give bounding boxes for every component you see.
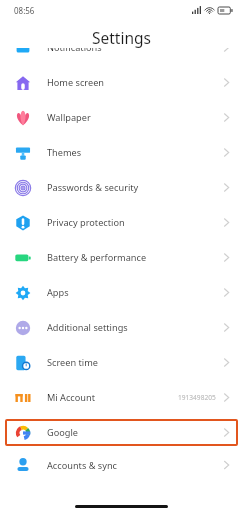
staticText: Settings (92, 27, 151, 48)
button[interactable]: Passwords & security (0, 170, 243, 205)
staticText: Screen time (47, 356, 98, 369)
staticText: Accounts & sync (47, 459, 117, 472)
staticText: Passwords & security (47, 181, 139, 194)
button[interactable]: Screen time (0, 345, 243, 380)
staticText: Wallpaper (47, 111, 91, 124)
staticText: 08:56 (14, 5, 35, 16)
staticText: Home screen (47, 76, 104, 89)
staticText: Mi Account (47, 391, 96, 404)
staticText: Battery & performance (47, 251, 147, 264)
button[interactable]: Additional settings (0, 310, 243, 345)
staticText: 1913498205 (178, 393, 216, 402)
button[interactable]: Mi Account (0, 380, 243, 415)
button[interactable]: Notifications (0, 48, 243, 65)
button[interactable]: Battery & performance (0, 240, 243, 275)
staticText: Themes (47, 146, 82, 159)
button[interactable]: Privacy protection (0, 205, 243, 240)
button[interactable]: Wallpaper (0, 100, 243, 135)
button[interactable]: Google (0, 415, 243, 450)
button[interactable]: Apps (0, 275, 243, 310)
staticText: Notifications (47, 48, 102, 54)
staticText: Privacy protection (47, 216, 125, 229)
button[interactable]: Home screen (0, 65, 243, 100)
button[interactable]: Themes (0, 135, 243, 170)
button[interactable]: Accounts & sync (0, 450, 243, 480)
staticText: Additional settings (47, 321, 128, 334)
staticText: Apps (47, 286, 69, 299)
staticText: Google (47, 426, 79, 439)
